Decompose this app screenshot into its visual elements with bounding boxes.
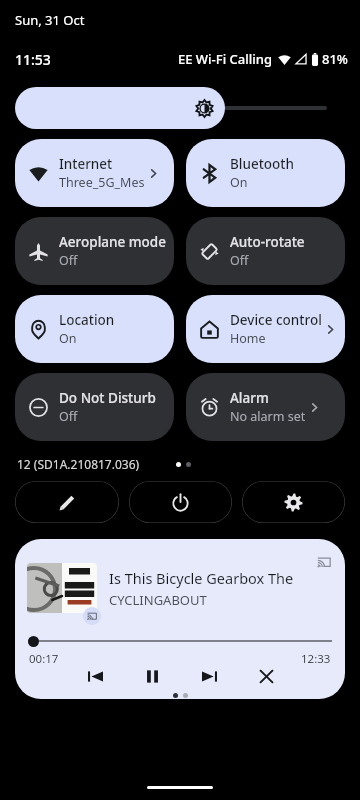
staticText: Auto-rotate — [230, 233, 305, 251]
staticText: Off — [59, 252, 78, 269]
staticText: 81% — [322, 50, 348, 68]
button[interactable]: Pause — [139, 663, 165, 689]
button[interactable]: Close — [253, 663, 279, 689]
button[interactable]: Device control — [186, 295, 345, 363]
staticText: Aeroplane mode — [59, 233, 166, 251]
staticText: Is This Bicycle Gearbox The FUT… — [109, 568, 331, 588]
staticText: No alarm set — [230, 408, 306, 425]
staticText: Sun, 31 Oct — [15, 11, 85, 29]
staticText: Bluetooth — [230, 155, 294, 173]
button[interactable]: Next — [196, 663, 222, 689]
staticText: Internet — [59, 155, 113, 173]
staticText: On — [230, 174, 248, 191]
staticText: Three_5G_Mes — [59, 174, 145, 191]
staticText: Device control — [230, 311, 322, 329]
staticText: Off — [59, 408, 78, 425]
staticText: 12 (SD1A.210817.036) — [17, 456, 140, 472]
staticText: 00:17 — [29, 651, 59, 667]
button[interactable]: Cast — [15, 539, 345, 699]
staticText: On — [59, 330, 77, 347]
staticText: Do Not Disturb — [59, 389, 156, 407]
button[interactable]: Aeroplane mode — [15, 217, 174, 285]
button[interactable]: Location — [15, 295, 174, 363]
button[interactable]: Previous — [82, 663, 108, 689]
button[interactable]: Internet — [15, 139, 174, 207]
staticText: 11:53 — [15, 50, 51, 69]
other: Cast — [317, 555, 331, 569]
staticText: CYCLINGABOUT — [109, 591, 207, 609]
staticText: 12:33 — [301, 651, 331, 667]
button[interactable]: Edit — [15, 481, 119, 523]
button[interactable]: Brightness — [15, 87, 345, 129]
staticText: Alarm — [230, 389, 269, 407]
staticText: Home — [230, 330, 266, 347]
button[interactable]: Do Not Disturb — [15, 373, 174, 441]
button[interactable]: Alarm — [186, 373, 345, 441]
staticText: EE Wi-Fi Calling — [178, 50, 272, 68]
button[interactable]: Bluetooth — [186, 139, 345, 207]
button[interactable]: Auto-rotate — [186, 217, 345, 285]
button[interactable]: Settings — [242, 481, 345, 523]
staticText: Off — [230, 252, 249, 269]
staticText: Location — [59, 311, 115, 329]
button[interactable]: Power — [129, 481, 232, 523]
